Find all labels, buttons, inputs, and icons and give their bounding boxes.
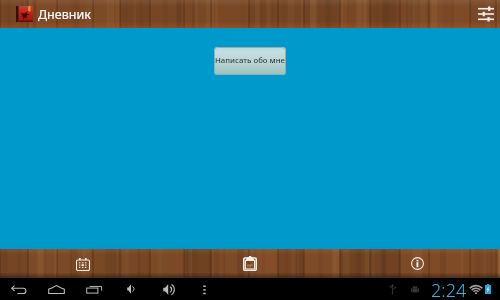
staticText: Написать обо мне bbox=[215, 55, 285, 66]
button[interactable]: More options bbox=[196, 278, 212, 300]
button[interactable]: Settings bbox=[472, 0, 500, 28]
staticText: Дневник bbox=[38, 6, 91, 23]
button[interactable]: Notes bbox=[234, 249, 266, 278]
button[interactable]: Volume down bbox=[120, 278, 144, 300]
button[interactable]: Volume up bbox=[157, 278, 181, 300]
button[interactable]: Back bbox=[7, 278, 31, 300]
button[interactable]: Написать обо мне bbox=[214, 47, 286, 75]
button[interactable]: Info bbox=[401, 249, 433, 278]
staticText: 2:24 bbox=[431, 278, 467, 300]
button[interactable]: Home bbox=[44, 278, 68, 300]
button[interactable]: Calendar bbox=[67, 249, 99, 278]
button[interactable]: Recents bbox=[82, 278, 106, 300]
